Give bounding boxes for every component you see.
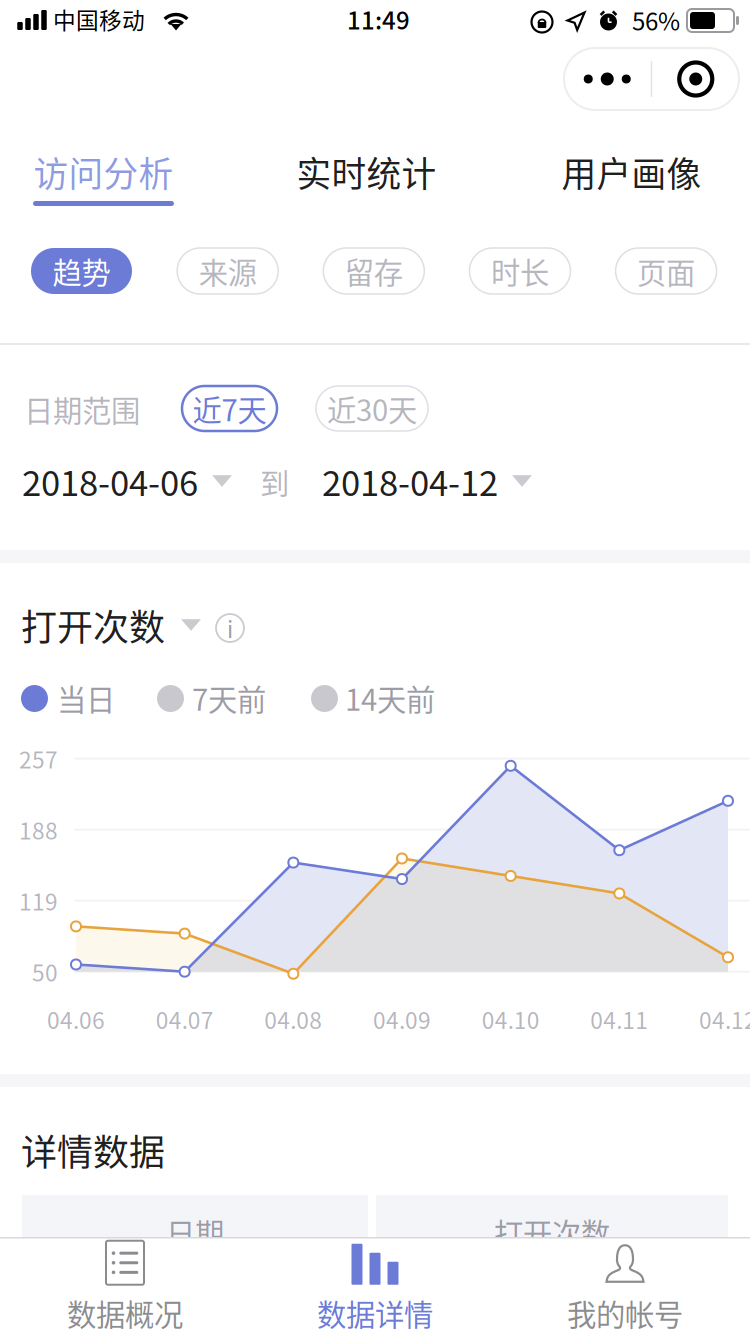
staticText: 趋势 bbox=[52, 250, 110, 292]
staticText: 2018-04-06 bbox=[22, 456, 198, 506]
button[interactable]: 访问分析 bbox=[0, 150, 207, 220]
button[interactable]: 我的帐号 bbox=[500, 1240, 750, 1334]
staticText: 04.06 bbox=[47, 1003, 105, 1035]
button[interactable]: 近30天 bbox=[316, 386, 428, 431]
staticText: 到 bbox=[260, 461, 289, 503]
button[interactable]: 2018-04-12 bbox=[322, 456, 532, 506]
staticText: 257 bbox=[19, 742, 58, 775]
button[interactable]: Close bbox=[652, 48, 739, 110]
button[interactable]: 页面 bbox=[616, 248, 717, 294]
staticText: 56% bbox=[632, 3, 680, 37]
staticText: 中国移动 bbox=[53, 3, 145, 35]
button[interactable]: 趋势 bbox=[31, 248, 132, 294]
staticText: 50 bbox=[32, 955, 58, 988]
button[interactable]: More bbox=[564, 48, 651, 110]
staticText: 日期范围 bbox=[24, 388, 140, 430]
button[interactable]: 时长 bbox=[469, 248, 570, 294]
staticText: 2018-04-12 bbox=[322, 456, 498, 506]
staticText: 04.08 bbox=[264, 1003, 322, 1035]
staticText: 打开次数 bbox=[21, 599, 165, 651]
button[interactable]: 实时统计 bbox=[263, 150, 470, 220]
staticText: 时长 bbox=[491, 250, 549, 292]
staticText: 14天前 bbox=[345, 677, 435, 719]
staticText: 用户画像 bbox=[561, 147, 701, 197]
staticText: 04.07 bbox=[156, 1003, 214, 1035]
staticText: 日期 bbox=[166, 1211, 224, 1253]
staticText: 04.12 bbox=[699, 1003, 750, 1035]
staticText: 04.10 bbox=[482, 1003, 540, 1035]
button[interactable]: 近7天 bbox=[182, 386, 277, 431]
staticText: 当日 bbox=[57, 677, 115, 719]
button[interactable]: 打开次数 bbox=[21, 599, 201, 651]
button[interactable]: 用户画像 bbox=[528, 150, 735, 220]
staticText: 访问分析 bbox=[33, 147, 173, 197]
staticText: 近7天 bbox=[192, 387, 266, 430]
staticText: 实时统计 bbox=[296, 147, 436, 197]
staticText: i bbox=[227, 612, 233, 644]
button[interactable]: 数据详情 bbox=[250, 1240, 500, 1334]
button[interactable]: 来源 bbox=[177, 248, 278, 294]
staticText: 数据详情 bbox=[317, 1292, 433, 1334]
staticText: 近30天 bbox=[327, 387, 417, 430]
staticText: 数据概况 bbox=[67, 1292, 183, 1334]
button[interactable]: Info bbox=[214, 612, 246, 644]
staticText: 详情数据 bbox=[21, 1124, 165, 1176]
button[interactable]: 2018-04-06 bbox=[22, 456, 232, 506]
button[interactable]: 留存 bbox=[323, 248, 424, 294]
staticText: 7天前 bbox=[192, 677, 266, 719]
button[interactable]: 数据概况 bbox=[0, 1240, 250, 1334]
staticText: 来源 bbox=[199, 250, 257, 292]
staticText: 188 bbox=[19, 813, 58, 846]
staticText: 我的帐号 bbox=[567, 1292, 683, 1334]
staticText: 04.09 bbox=[373, 1003, 431, 1035]
staticText: 04.11 bbox=[590, 1003, 648, 1035]
staticText: 页面 bbox=[637, 250, 695, 292]
staticText: 打开次数 bbox=[494, 1211, 610, 1253]
staticText: 119 bbox=[19, 884, 58, 917]
staticText: 11:49 bbox=[347, 2, 410, 36]
staticText: 留存 bbox=[345, 250, 403, 292]
